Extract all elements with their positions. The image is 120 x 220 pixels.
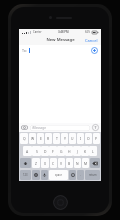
staticText: A [26, 149, 29, 154]
button[interactable]: E [37, 133, 44, 144]
button[interactable]: Z [32, 158, 40, 168]
button[interactable]: Add contact [91, 47, 98, 54]
staticText: V [60, 161, 63, 166]
staticText: iMessage [32, 126, 47, 130]
button[interactable]: U [69, 133, 76, 144]
staticText: Q [23, 136, 26, 141]
staticText: return [89, 173, 97, 177]
button[interactable]: Emoji [69, 170, 76, 180]
staticText: O [87, 136, 90, 141]
button[interactable]: Y [61, 133, 68, 144]
button[interactable]: G [57, 146, 65, 156]
button[interactable]: W [29, 133, 36, 144]
staticText: B [68, 161, 71, 166]
staticText: D [44, 149, 47, 154]
staticText: F [52, 149, 54, 154]
staticText: New Message [46, 37, 75, 43]
button[interactable]: O [85, 133, 92, 144]
staticText: J [77, 149, 78, 154]
button[interactable]: K [81, 146, 89, 156]
staticText: To: [22, 48, 27, 53]
button[interactable]: D [41, 146, 49, 156]
staticText: E [40, 136, 42, 141]
staticText: U [71, 136, 74, 141]
button[interactable]: To: [19, 45, 101, 55]
button[interactable]: Home [53, 195, 68, 210]
button[interactable]: H [65, 146, 73, 156]
button[interactable]: A [23, 146, 32, 156]
staticText: . [80, 173, 81, 177]
staticText: P [95, 136, 98, 141]
button[interactable]: C [50, 158, 57, 168]
button[interactable]: Backspace [90, 158, 100, 168]
button[interactable]: V [58, 158, 65, 168]
staticText: space [55, 173, 63, 177]
button[interactable]: L [89, 146, 97, 156]
staticText: M [84, 161, 88, 166]
button[interactable]: F [49, 146, 57, 156]
button[interactable]: Camera [21, 124, 28, 131]
button[interactable]: iMessage [30, 125, 90, 131]
button[interactable]: N [74, 158, 81, 168]
staticText: 3:48 PM [58, 30, 69, 34]
button[interactable]: R [45, 133, 52, 144]
staticText: 84% [85, 30, 91, 34]
button[interactable]: J [73, 146, 81, 156]
button[interactable]: Numbers [20, 170, 31, 180]
button[interactable]: X [41, 158, 49, 168]
staticText: L [92, 149, 94, 154]
button[interactable]: Shift [20, 158, 31, 168]
button[interactable]: T [53, 133, 60, 144]
staticText: I [80, 136, 82, 141]
staticText: G [60, 149, 63, 154]
button[interactable]: Next keyboard [32, 170, 40, 180]
staticText: X [44, 161, 46, 166]
staticText: H [68, 149, 71, 154]
staticText: Z [35, 161, 37, 166]
button[interactable]: return [85, 170, 100, 180]
button[interactable]: I [77, 133, 84, 144]
button[interactable]: Q [20, 133, 28, 144]
button[interactable]: B [66, 158, 73, 168]
staticText: S [36, 149, 38, 154]
staticText: Y [64, 136, 66, 141]
button[interactable]: P [93, 133, 100, 144]
staticText: W [31, 136, 35, 141]
button[interactable]: Send [92, 124, 99, 131]
staticText: K [84, 149, 87, 154]
staticText: N [76, 161, 79, 166]
button[interactable]: M [82, 158, 89, 168]
button[interactable]: space [49, 170, 68, 180]
staticText: Cancel [85, 38, 98, 43]
button[interactable]: Dictate [41, 170, 48, 180]
button[interactable]: Cancel [82, 37, 101, 44]
staticText: R [47, 136, 50, 141]
staticText: 123 [23, 173, 28, 177]
staticText: C [52, 161, 55, 166]
staticText: T [56, 136, 58, 141]
staticText: Carrier [33, 30, 42, 34]
button[interactable]: S [32, 146, 41, 156]
